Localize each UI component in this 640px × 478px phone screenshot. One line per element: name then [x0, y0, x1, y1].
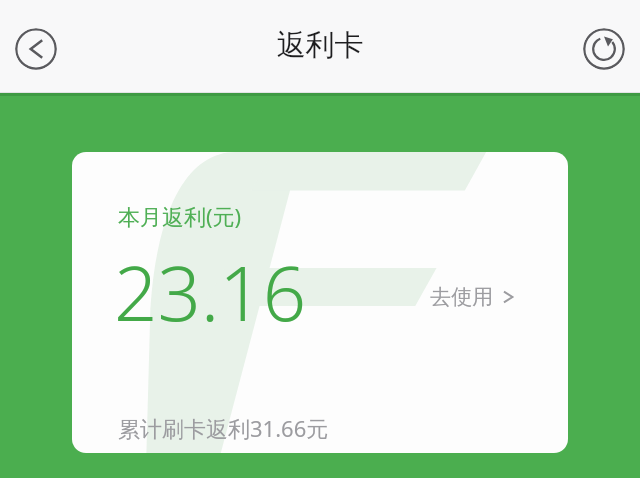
staticText: 去使用	[430, 284, 493, 310]
staticText: 本月返利(元)	[118, 201, 242, 231]
button[interactable]: 去使用	[430, 284, 515, 310]
staticText: 累计刷卡返利31.66元	[118, 413, 329, 443]
button[interactable]: Refresh	[583, 28, 625, 70]
button[interactable]: 本月返利(元)	[72, 152, 568, 453]
staticText: 返利卡	[0, 27, 640, 64]
staticText: 23.16	[114, 240, 307, 344]
button[interactable]: Back	[15, 28, 57, 70]
